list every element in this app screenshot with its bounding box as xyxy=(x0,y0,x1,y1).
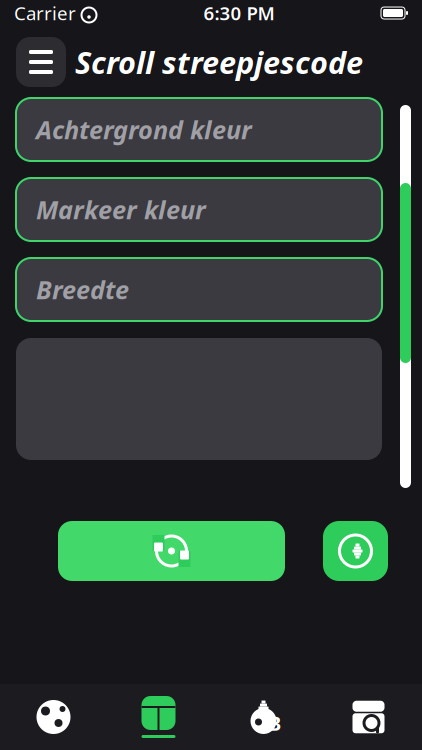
button[interactable]: Generate xyxy=(106,686,211,748)
button[interactable]: Colors xyxy=(211,686,316,748)
staticText: Carrier xyxy=(14,1,76,25)
staticText: B xyxy=(268,710,281,736)
button[interactable]: Browse xyxy=(1,686,106,748)
staticText: 6:30 PM xyxy=(203,1,274,25)
staticText: Achtergrond kleur xyxy=(36,113,252,146)
button[interactable]: Menu xyxy=(16,37,66,87)
staticText: Breedte xyxy=(36,273,129,306)
button[interactable]: Scan xyxy=(316,686,421,748)
staticText: Scroll streepjescode xyxy=(75,42,363,82)
button[interactable]: Achtergrond kleur xyxy=(16,98,382,161)
staticText: Markeer kleur xyxy=(36,193,206,226)
button[interactable]: Regenerate barcode xyxy=(58,521,285,581)
button[interactable]: Markeer kleur xyxy=(16,178,382,241)
button[interactable]: Breedte xyxy=(16,258,382,321)
button[interactable]: Play xyxy=(323,521,388,581)
